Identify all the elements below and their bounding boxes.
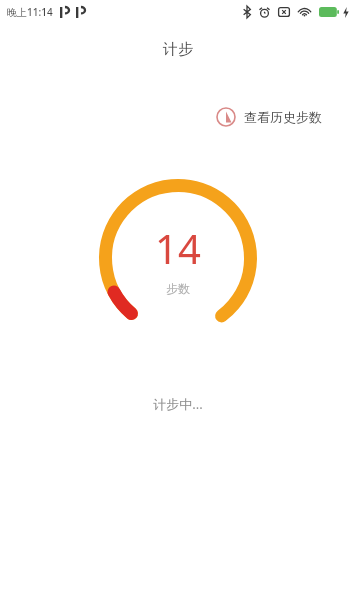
staticText: 查看历史步数 — [244, 109, 322, 125]
staticText: 计步中... — [153, 395, 203, 413]
staticText: 步数 — [166, 281, 190, 296]
staticText: 计步 — [163, 40, 193, 59]
button[interactable]: 查看历史步数 — [210, 103, 328, 131]
staticText: 14 — [155, 221, 201, 275]
staticText: 晚上11:14 — [7, 5, 53, 19]
other: 查看历史步数 — [216, 107, 236, 127]
